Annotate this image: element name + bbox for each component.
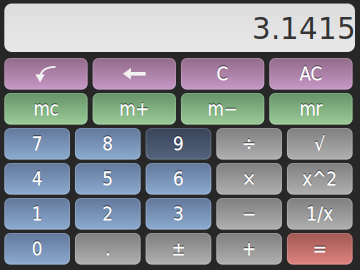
staticText: m− [208, 98, 238, 120]
staticText: 3 [173, 202, 184, 224]
staticText: 0 [32, 238, 43, 260]
staticText: mc [33, 98, 58, 120]
button[interactable]: Undo [4, 58, 88, 90]
staticText: 8 [102, 132, 113, 154]
staticText: 3 [173, 203, 184, 225]
button[interactable]: 8 [75, 128, 141, 160]
staticText: 3.1415 [252, 12, 356, 46]
staticText: mc [33, 97, 58, 119]
button[interactable]: mr [269, 93, 353, 125]
button[interactable]: ÷ [216, 128, 282, 160]
staticText: 8 [102, 133, 113, 155]
button[interactable]: Backspace [93, 58, 176, 90]
staticText: 8 [102, 133, 113, 155]
button[interactable]: 3 [146, 198, 211, 230]
staticText: 1 [32, 203, 43, 225]
staticText: C [217, 63, 229, 85]
button[interactable]: 6 [146, 163, 211, 195]
button[interactable]: AC [269, 58, 353, 90]
staticText: × [242, 167, 256, 189]
button[interactable]: m+ [93, 93, 176, 125]
staticText: 3 [173, 203, 184, 225]
staticText: 5 [102, 167, 113, 189]
staticText: − [242, 202, 256, 224]
staticText: 2 [102, 202, 113, 224]
staticText: − [242, 203, 256, 225]
staticText: x^2 [302, 168, 337, 190]
staticText: x^2 [302, 168, 337, 190]
staticText: × [242, 168, 256, 190]
staticText: ± [171, 238, 185, 260]
staticText: AC [299, 62, 322, 84]
staticText: 1 [32, 202, 43, 224]
button[interactable]: 2 [75, 198, 141, 230]
button[interactable]: 4 [4, 163, 70, 195]
button[interactable]: 1/x [287, 198, 353, 230]
staticText: 7 [32, 133, 43, 155]
staticText: ÷ [242, 133, 256, 155]
button[interactable]: ± [146, 233, 211, 265]
staticText: x^2 [302, 167, 337, 189]
staticText: 6 [173, 167, 184, 189]
button[interactable]: + [216, 233, 282, 265]
button[interactable]: . [75, 233, 141, 265]
button[interactable]: 1 [4, 198, 70, 230]
staticText: 1/x [306, 202, 333, 224]
staticText: 4 [32, 167, 43, 189]
staticText: 7 [32, 133, 43, 155]
staticText: mr [299, 97, 322, 119]
staticText: 2 [102, 203, 113, 225]
staticText: mr [299, 98, 322, 120]
button[interactable]: 5 [75, 163, 141, 195]
staticText: √ [314, 133, 325, 155]
staticText: m+ [119, 98, 149, 120]
staticText: = [313, 238, 327, 260]
staticText: 9 [173, 133, 184, 155]
staticText: m− [208, 97, 238, 119]
button[interactable]: × [216, 163, 282, 195]
staticText: . [105, 238, 110, 260]
staticText: . [105, 237, 110, 259]
staticText: 2 [102, 203, 113, 225]
button[interactable]: C [181, 58, 264, 90]
staticText: × [242, 168, 256, 190]
staticText: 4 [32, 168, 43, 190]
staticText: 1 [32, 203, 43, 225]
button[interactable]: − [216, 198, 282, 230]
staticText: C [217, 63, 229, 85]
staticText: m+ [119, 98, 149, 120]
button[interactable]: 0 [4, 233, 70, 265]
staticText: ± [171, 237, 185, 259]
staticText: √ [314, 132, 325, 154]
button[interactable]: m− [181, 93, 264, 125]
button[interactable]: 9 [146, 128, 211, 160]
staticText: = [313, 237, 327, 259]
staticText: m+ [119, 97, 149, 119]
staticText: ÷ [242, 132, 256, 154]
staticText: ± [171, 238, 185, 260]
button[interactable]: x^2 [287, 163, 353, 195]
button[interactable]: = [287, 233, 353, 265]
staticText: . [105, 238, 110, 260]
button[interactable]: 7 [4, 128, 70, 160]
staticText: 5 [102, 168, 113, 190]
staticText: mc [33, 98, 58, 120]
staticText: 9 [173, 132, 184, 154]
staticText: 6 [173, 168, 184, 190]
staticText: 0 [32, 237, 43, 259]
staticText: C [217, 62, 229, 84]
staticText: + [242, 238, 256, 260]
button[interactable]: √ [287, 128, 353, 160]
staticText: AC [299, 63, 322, 85]
staticText: 7 [32, 132, 43, 154]
staticText: 4 [32, 168, 43, 190]
staticText: AC [299, 63, 322, 85]
staticText: + [242, 238, 256, 260]
staticText: √ [314, 133, 325, 155]
staticText: ÷ [242, 133, 256, 155]
staticText: mr [299, 98, 322, 120]
staticText: 5 [102, 168, 113, 190]
button[interactable]: mc [4, 93, 88, 125]
staticText: 9 [173, 133, 184, 155]
staticText: 1/x [306, 203, 333, 225]
